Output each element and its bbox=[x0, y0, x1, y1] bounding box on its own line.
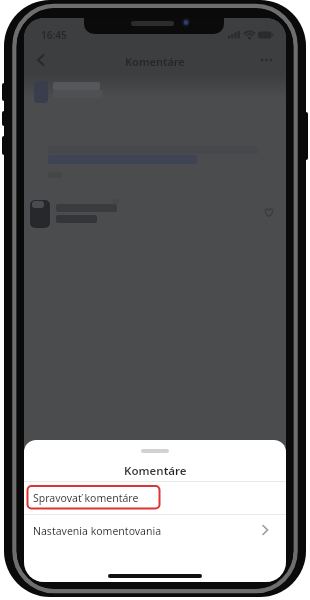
button[interactable] bbox=[262, 205, 276, 219]
staticText: Spravovať komentáre bbox=[33, 491, 139, 505]
staticText: Nastavenia komentovania bbox=[33, 524, 162, 538]
button[interactable]: Nastavenia komentovania bbox=[24, 515, 286, 547]
staticText: 16:45 bbox=[41, 28, 67, 42]
button[interactable] bbox=[257, 51, 277, 69]
button[interactable]: Spravovať komentáre bbox=[24, 482, 286, 514]
staticText: Komentáre bbox=[125, 54, 185, 69]
button[interactable] bbox=[30, 48, 52, 70]
staticText: Komentáre bbox=[124, 463, 187, 479]
